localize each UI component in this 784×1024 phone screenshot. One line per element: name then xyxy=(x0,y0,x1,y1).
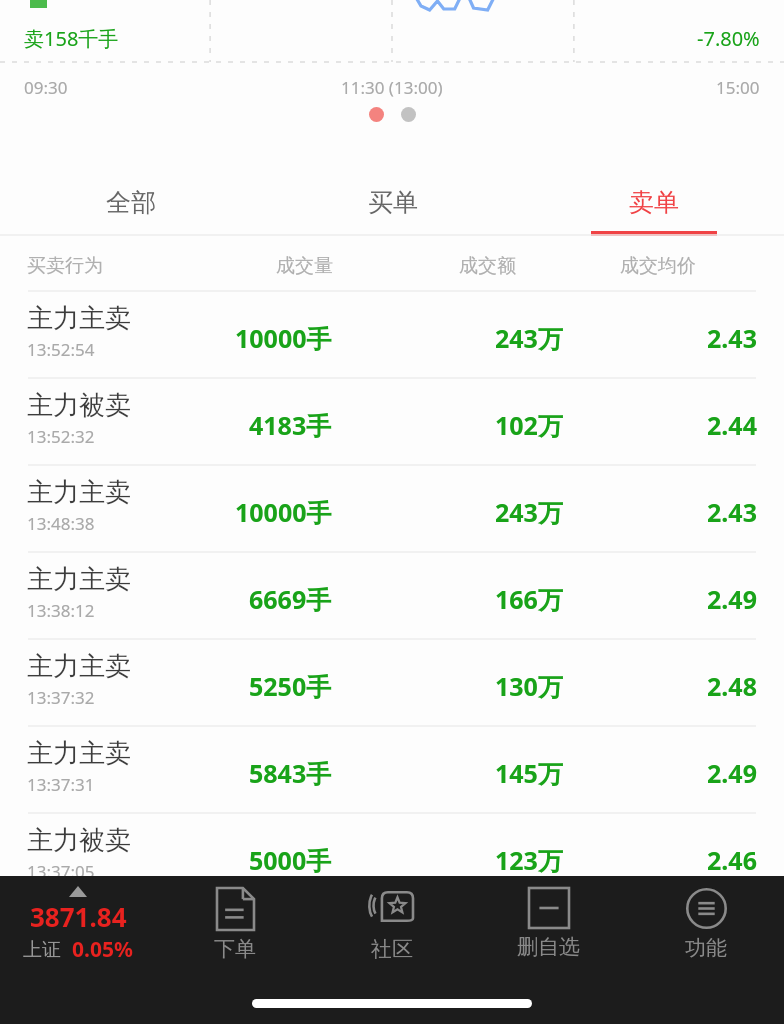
staticText: 社区 xyxy=(371,936,413,962)
staticText: 09:30 xyxy=(24,76,68,99)
button[interactable]: 3871.84 xyxy=(0,876,156,986)
staticText: 13:37:05 xyxy=(27,860,95,883)
staticText: 全部 xyxy=(106,187,156,218)
staticText: 13:37:32 xyxy=(27,686,95,709)
staticText: 130万 xyxy=(495,669,563,703)
button[interactable]: 主力被卖 xyxy=(0,379,784,466)
staticText: 成交额 xyxy=(459,254,516,278)
button[interactable]: 功能 xyxy=(627,876,784,986)
staticText: 成交量 xyxy=(276,254,333,278)
staticText: 主力主卖 xyxy=(27,563,131,596)
staticText: 买卖行为 xyxy=(27,254,103,278)
staticText: 3871.84 xyxy=(30,899,127,934)
staticText: 13:52:32 xyxy=(27,425,95,448)
staticText: 主力主卖 xyxy=(27,737,131,770)
staticText: 2.49 xyxy=(707,582,757,616)
button[interactable]: 删自选 xyxy=(470,876,627,986)
staticText: 243万 xyxy=(495,321,563,355)
button[interactable]: 主力主卖 xyxy=(0,466,784,553)
staticText: 13:38:12 xyxy=(27,599,95,622)
button[interactable]: 主力主卖 xyxy=(0,640,784,727)
staticText: 主力被卖 xyxy=(27,389,131,422)
staticText: 102万 xyxy=(495,408,563,442)
staticText: 15:00 xyxy=(716,76,760,99)
staticText: 卖单 xyxy=(629,187,679,218)
staticText: 5843手 xyxy=(249,756,332,790)
staticText: 10000手 xyxy=(235,321,332,355)
staticText: 2.43 xyxy=(707,321,757,355)
staticText: 13:48:38 xyxy=(27,512,95,535)
button[interactable]: 主力被卖 xyxy=(0,814,784,901)
staticText: 下单 xyxy=(214,936,256,962)
staticText: 0.05% xyxy=(72,935,133,964)
staticText: 166万 xyxy=(495,582,563,616)
staticText: 2.48 xyxy=(707,669,757,703)
staticText: 11:30 (13:00) xyxy=(341,76,443,99)
staticText: 成交均价 xyxy=(620,254,696,278)
staticText: 2.43 xyxy=(707,495,757,529)
staticText: 13:52:54 xyxy=(27,338,95,361)
button[interactable]: 主力主卖 xyxy=(0,727,784,814)
staticText: 4183手 xyxy=(249,408,332,442)
staticText: 主力主卖 xyxy=(27,302,131,335)
button[interactable]: 主力主卖 xyxy=(0,292,784,379)
button[interactable]: 买单 xyxy=(262,145,523,236)
staticText: 主力主卖 xyxy=(27,476,131,509)
staticText: 卖158千手 xyxy=(24,25,119,52)
staticText: 删自选 xyxy=(517,934,580,960)
button[interactable]: 主力主卖 xyxy=(0,553,784,640)
staticText: 10000手 xyxy=(235,495,332,529)
staticText: 123万 xyxy=(495,843,563,877)
button[interactable]: 下单 xyxy=(156,876,313,986)
button[interactable]: 全部 xyxy=(0,145,262,236)
staticText: 145万 xyxy=(495,756,563,790)
staticText: 上证 xyxy=(23,938,61,962)
staticText: 6669手 xyxy=(249,582,332,616)
staticText: 2.44 xyxy=(707,408,757,442)
button[interactable]: 卖单 xyxy=(523,145,784,236)
staticText: 功能 xyxy=(685,935,727,961)
staticText: 主力被卖 xyxy=(27,824,131,857)
staticText: 243万 xyxy=(495,495,563,529)
staticText: 买单 xyxy=(368,187,418,218)
staticText: -7.80% xyxy=(697,25,760,52)
staticText: 13:37:31 xyxy=(27,773,95,796)
button[interactable]: 社区 xyxy=(313,876,470,986)
staticText: 主力主卖 xyxy=(27,650,131,683)
staticText: 2.49 xyxy=(707,756,757,790)
staticText: 5250手 xyxy=(249,669,332,703)
staticText: 2.46 xyxy=(707,843,757,877)
staticText: 5000手 xyxy=(249,843,332,877)
